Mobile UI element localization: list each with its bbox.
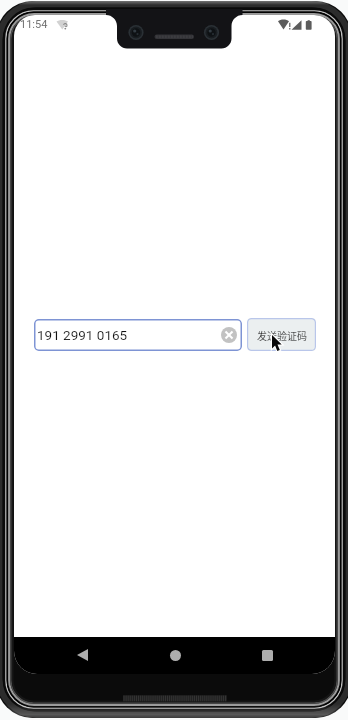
button[interactable]: Recent apps: [249, 637, 285, 673]
staticText: 发送验证码: [257, 328, 307, 342]
staticText: 191 2991 0165: [37, 327, 128, 343]
button[interactable]: 发送验证码: [247, 318, 316, 351]
button[interactable]: 191 2991 0165: [34, 319, 242, 351]
button[interactable]: Home: [157, 637, 193, 673]
button[interactable]: Clear: [221, 327, 237, 343]
staticText: 11:54: [20, 18, 48, 31]
button[interactable]: Back: [64, 637, 100, 673]
